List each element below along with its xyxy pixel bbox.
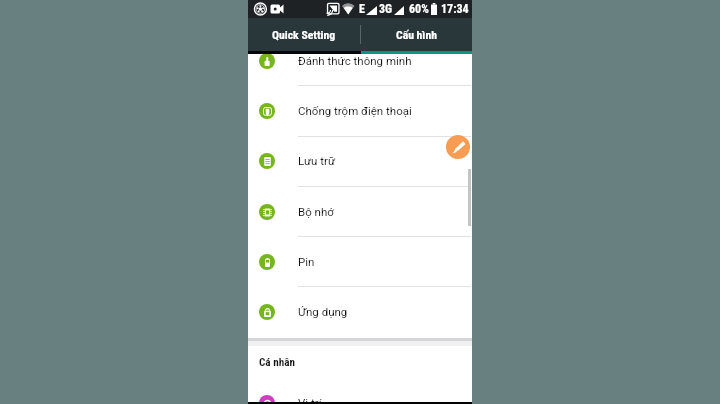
staticText: Cấu hình (396, 28, 437, 42)
staticText: Chống trộm điện thoại (298, 104, 412, 117)
staticText: Pin (298, 255, 315, 268)
staticText: Cá nhân (259, 356, 296, 369)
staticText: E (359, 2, 365, 16)
button[interactable]: Pin (248, 237, 472, 287)
button[interactable]: Đánh thức thông minh (248, 36, 472, 86)
staticText: 60% (409, 2, 429, 16)
button[interactable]: Vị trí (248, 378, 472, 404)
button[interactable]: Lưu trữ (248, 136, 472, 186)
staticText: Quick Setting (272, 28, 336, 42)
staticText: Bộ nhớ (298, 205, 334, 218)
button[interactable]: Bộ nhớ (248, 187, 472, 237)
staticText: 17:34 (441, 2, 469, 16)
staticText: 3G (379, 2, 393, 16)
button[interactable]: Cấu hình (360, 18, 472, 51)
button[interactable]: Chống trộm điện thoại (248, 86, 472, 136)
staticText: Đánh thức thông minh (298, 54, 412, 67)
staticText: Ứng dụng (298, 305, 348, 318)
button[interactable]: Quick Setting (248, 18, 360, 51)
button[interactable]: Edit theme (446, 135, 470, 159)
staticText: Vị trí (298, 396, 322, 404)
staticText: Lưu trữ (298, 154, 336, 167)
button[interactable]: Ứng dụng (248, 287, 472, 337)
